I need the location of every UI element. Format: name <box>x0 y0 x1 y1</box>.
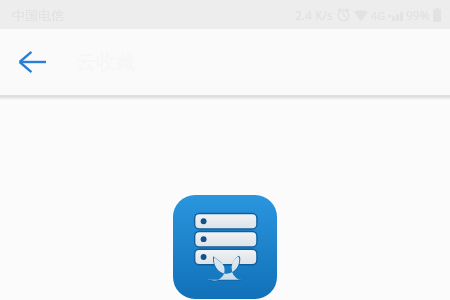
staticText: 99% <box>406 7 430 23</box>
staticText: 中国电信 <box>12 7 64 23</box>
button[interactable]: Back <box>10 40 54 84</box>
staticText: 4G <box>371 8 386 23</box>
staticText: 2.4 K/s <box>295 7 333 23</box>
button[interactable]: Cloud storage app icon <box>173 195 277 299</box>
